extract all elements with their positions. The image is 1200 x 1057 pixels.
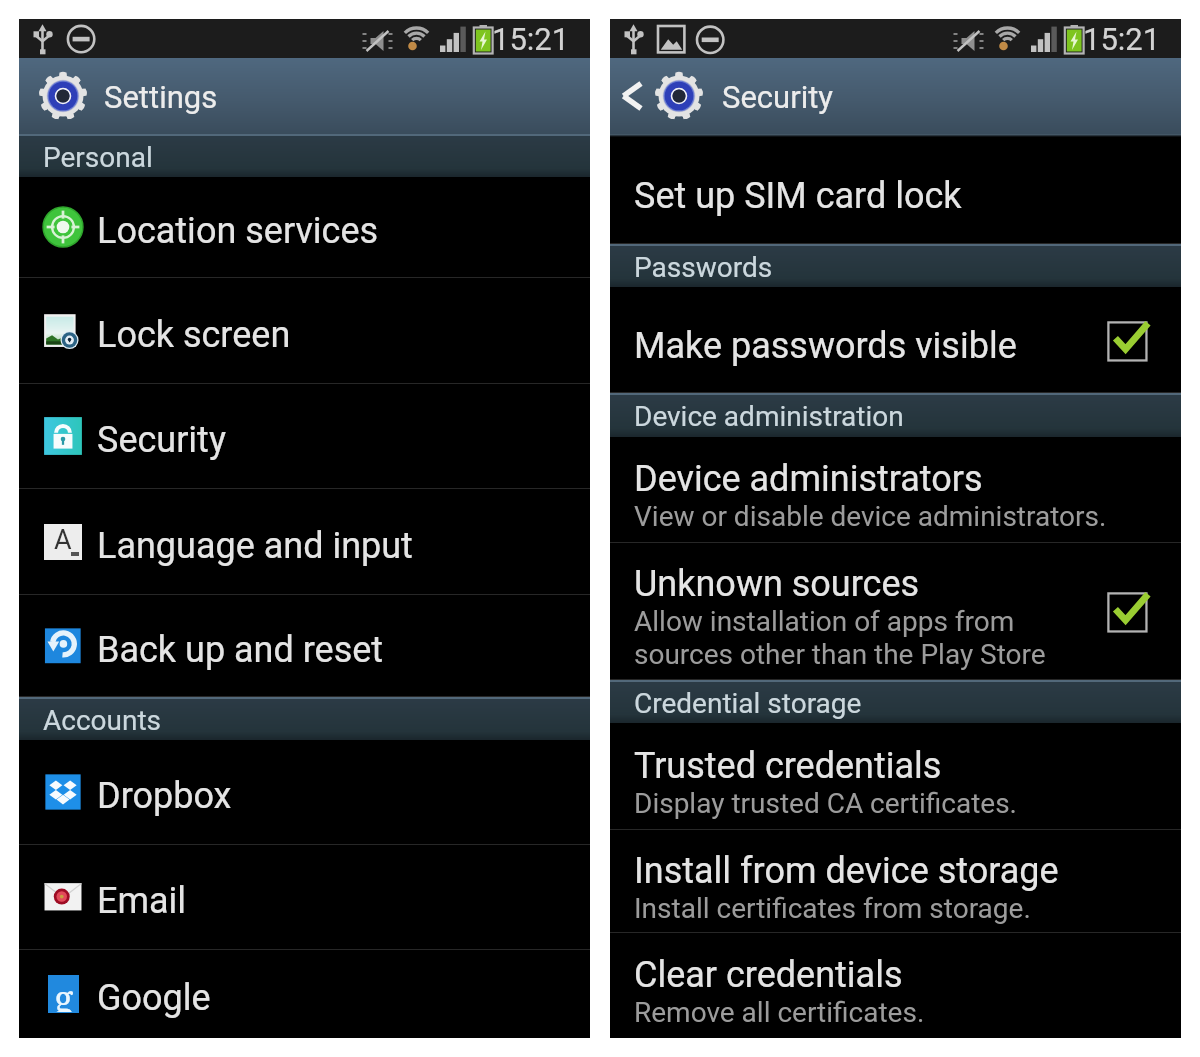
staticText: Accounts: [43, 704, 162, 737]
button[interactable]: Install from device storage: [610, 830, 1181, 933]
button[interactable]: Clear credentials: [610, 933, 1181, 1037]
staticText: Google: [97, 977, 211, 1019]
staticText: Remove all certificates.: [634, 996, 925, 1029]
button[interactable]: Dropbox: [19, 740, 590, 845]
staticText: Back up and reset: [97, 629, 384, 671]
staticText: Allow installation of apps from sources …: [634, 605, 1046, 671]
button[interactable]: Toggle: [1104, 318, 1148, 362]
staticText: Trusted credentials: [634, 745, 942, 787]
staticText: Device administrators: [634, 458, 983, 500]
staticText: 15:21: [492, 21, 570, 57]
staticText: Install certificates from storage.: [634, 892, 1031, 925]
staticText: Security: [97, 419, 226, 461]
button[interactable]: Email: [19, 845, 590, 950]
staticText: Language and input: [97, 525, 413, 567]
staticText: Set up SIM card lock: [634, 175, 962, 217]
button[interactable]: Trusted credentials: [610, 723, 1181, 830]
button[interactable]: Back up and reset: [19, 595, 590, 697]
staticText: Credential storage: [634, 687, 862, 720]
staticText: Display trusted CA certificates.: [634, 787, 1017, 820]
staticText: Security: [722, 79, 834, 115]
staticText: Device administration: [634, 400, 904, 433]
button[interactable]: Navigate up: [610, 58, 654, 134]
staticText: Dropbox: [97, 775, 232, 817]
button[interactable]: Lock screen: [19, 278, 590, 384]
staticText: Make passwords visible: [634, 325, 1017, 367]
staticText: 15:21: [1083, 21, 1161, 57]
button[interactable]: Unknown sources: [610, 543, 1181, 680]
staticText: Email: [97, 880, 187, 922]
staticText: Install from device storage: [634, 850, 1059, 892]
button[interactable]: g: [19, 950, 590, 1038]
staticText: Personal: [43, 141, 153, 174]
staticText: Clear credentials: [634, 954, 903, 996]
staticText: A: [54, 524, 72, 556]
button[interactable]: Toggle: [1104, 589, 1148, 633]
button[interactable]: A: [19, 489, 590, 595]
button[interactable]: Location services: [19, 177, 590, 278]
staticText: Unknown sources: [634, 563, 920, 605]
button[interactable]: Security: [19, 384, 590, 489]
staticText: Passwords: [634, 251, 773, 284]
staticText: Location services: [97, 210, 379, 252]
staticText: g: [54, 974, 74, 1012]
staticText: Settings: [104, 79, 218, 115]
button[interactable]: Device administrators: [610, 437, 1181, 543]
staticText: Lock screen: [97, 314, 291, 356]
button[interactable]: Make passwords visible: [610, 287, 1181, 393]
staticText: View or disable device administrators.: [634, 500, 1107, 533]
button[interactable]: Set up SIM card lock: [610, 137, 1181, 244]
